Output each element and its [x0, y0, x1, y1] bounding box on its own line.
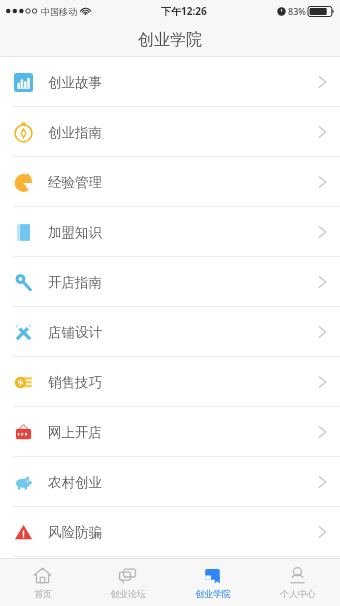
button[interactable]: 首页 — [0, 559, 85, 606]
button[interactable]: 销售技巧 — [0, 357, 340, 407]
staticText: 创业指南 — [48, 124, 102, 141]
button[interactable]: 创业学院 — [170, 559, 255, 606]
staticText: 创业学院 — [138, 30, 202, 50]
staticText: 农村创业 — [48, 474, 102, 491]
button[interactable]: 经验管理 — [0, 157, 340, 207]
button[interactable]: 农村创业 — [0, 457, 340, 507]
button[interactable]: 创业故事 — [0, 57, 340, 107]
staticText: 创业论坛 — [110, 588, 146, 599]
staticText: 中国移动 — [41, 6, 77, 17]
staticText: 首页 — [34, 588, 52, 599]
button[interactable]: 网上开店 — [0, 407, 340, 457]
staticText: 创业学院 — [195, 588, 231, 599]
staticText: 开店指南 — [48, 274, 102, 291]
staticText: 销售技巧 — [48, 374, 102, 391]
button[interactable]: 创业指南 — [0, 107, 340, 157]
button[interactable]: 开店指南 — [0, 257, 340, 307]
staticText: 下午12:26 — [161, 4, 207, 18]
button[interactable]: 个人中心 — [255, 559, 340, 606]
staticText: 个人中心 — [280, 588, 316, 599]
button[interactable]: 店铺设计 — [0, 307, 340, 357]
staticText: 风险防骗 — [48, 524, 102, 541]
staticText: 83% — [288, 5, 306, 17]
button[interactable]: 加盟知识 — [0, 207, 340, 257]
staticText: 店铺设计 — [48, 324, 102, 341]
button[interactable]: 创业论坛 — [85, 559, 170, 606]
staticText: 经验管理 — [48, 174, 102, 191]
button[interactable]: 风险防骗 — [0, 507, 340, 557]
staticText: 加盟知识 — [48, 224, 102, 241]
staticText: 创业故事 — [48, 74, 102, 91]
staticText: 网上开店 — [48, 424, 102, 441]
